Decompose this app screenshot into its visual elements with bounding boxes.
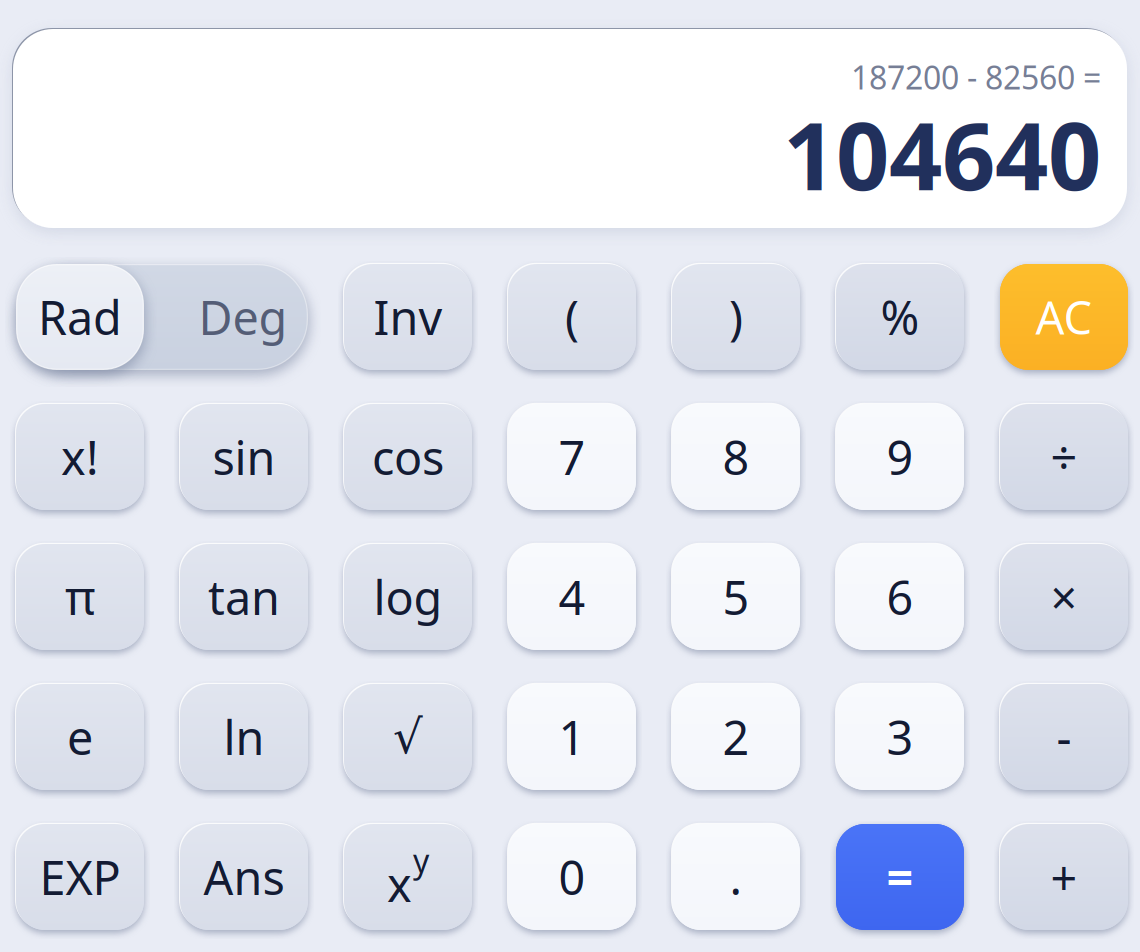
staticText: x <box>387 853 412 915</box>
button[interactable]: e <box>16 684 144 790</box>
button[interactable]: ln <box>180 684 308 790</box>
button[interactable]: 6 <box>836 544 964 650</box>
button[interactable]: 8 <box>672 404 800 510</box>
staticText: 5 <box>722 566 749 628</box>
staticText: % <box>880 286 919 348</box>
staticText: ÷ <box>1050 426 1077 488</box>
staticText: - <box>1056 706 1071 768</box>
staticText: 7 <box>558 426 585 488</box>
button[interactable]: - <box>1000 684 1128 790</box>
button[interactable]: tan <box>180 544 308 650</box>
button[interactable]: 0 <box>508 824 636 930</box>
staticText: Rad <box>38 286 122 348</box>
staticText: . <box>729 846 742 908</box>
staticText: ( <box>565 286 579 348</box>
button[interactable]: 4 <box>508 544 636 650</box>
button[interactable]: 7 <box>508 404 636 510</box>
button[interactable]: Rad <box>16 264 144 370</box>
button[interactable]: % <box>836 264 964 370</box>
staticText: x! <box>61 426 99 488</box>
staticText: ) <box>729 286 743 348</box>
button[interactable]: 9 <box>836 404 964 510</box>
button[interactable]: Inv <box>344 264 472 370</box>
staticText: 1 <box>558 706 585 768</box>
staticText: 0 <box>558 846 585 908</box>
staticText: + <box>1050 846 1077 908</box>
button[interactable]: cos <box>344 404 472 510</box>
button[interactable]: 1 <box>508 684 636 790</box>
staticText: Inv <box>373 286 442 348</box>
staticText: 8 <box>722 426 749 488</box>
staticText: 104640 <box>783 92 1101 216</box>
button[interactable]: + <box>1000 824 1128 930</box>
staticText: EXP <box>39 846 120 908</box>
button[interactable]: = <box>836 824 964 930</box>
staticText: tan <box>208 566 280 628</box>
button[interactable]: 5 <box>672 544 800 650</box>
staticText: Ans <box>203 846 284 908</box>
button[interactable]: x <box>344 824 472 930</box>
button[interactable]: . <box>672 824 800 930</box>
button[interactable]: 2 <box>672 684 800 790</box>
staticText: 9 <box>886 426 913 488</box>
staticText: 2 <box>722 706 749 768</box>
staticText: = <box>886 846 913 908</box>
staticText: 3 <box>886 706 913 768</box>
button[interactable]: EXP <box>16 824 144 930</box>
button[interactable]: ) <box>672 264 800 370</box>
button[interactable]: ÷ <box>1000 404 1128 510</box>
staticText: √ <box>393 710 423 763</box>
button[interactable]: ( <box>508 264 636 370</box>
staticText: e <box>67 706 93 768</box>
staticText: log <box>373 566 442 628</box>
staticText: cos <box>372 426 444 488</box>
button[interactable]: AC <box>1000 264 1128 370</box>
button[interactable]: Ans <box>180 824 308 930</box>
staticText: Deg <box>198 286 287 348</box>
button[interactable]: × <box>1000 544 1128 650</box>
button[interactable]: sin <box>180 404 308 510</box>
button[interactable]: Deg <box>144 264 308 370</box>
staticText: π <box>65 566 95 628</box>
button[interactable]: π <box>16 544 144 650</box>
staticText: × <box>1050 566 1077 628</box>
staticText: y <box>413 839 429 881</box>
button[interactable]: log <box>344 544 472 650</box>
staticText: 187200 - 82560 = <box>851 56 1101 98</box>
staticText: sin <box>212 426 275 488</box>
staticText: 6 <box>886 566 913 628</box>
staticText: ln <box>223 706 264 768</box>
button[interactable]: x! <box>16 404 144 510</box>
staticText: AC <box>1035 287 1092 347</box>
staticText: 4 <box>558 566 585 628</box>
button[interactable]: 3 <box>836 684 964 790</box>
button[interactable]: √ <box>344 684 472 790</box>
